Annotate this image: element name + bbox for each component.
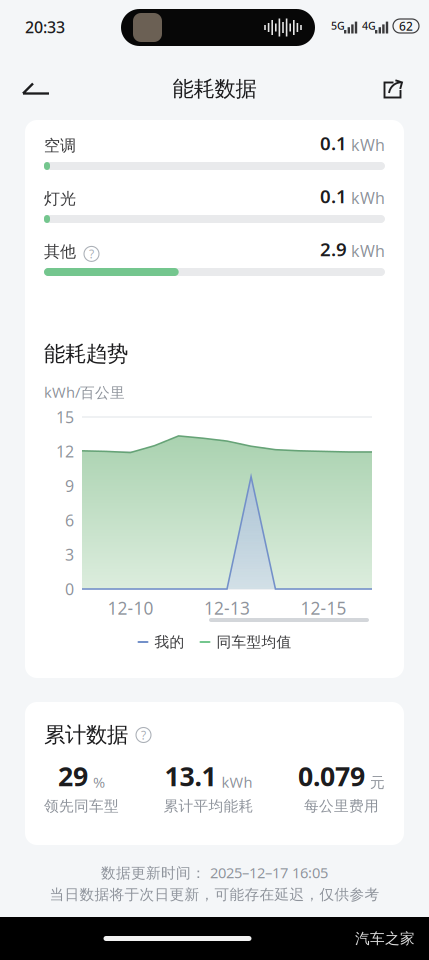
staticText: 0.079	[298, 758, 365, 794]
staticText: ?	[141, 727, 146, 743]
staticText: 元	[370, 774, 385, 792]
staticText: 累计平均能耗	[163, 797, 253, 815]
staticText: 12-10	[107, 596, 153, 619]
staticText: 20:33	[25, 16, 65, 38]
staticText: kWh	[221, 772, 252, 792]
staticText: 我的	[154, 633, 184, 651]
staticText: kWh	[351, 134, 385, 155]
staticText: 6	[65, 510, 74, 531]
staticText: kWh	[351, 187, 385, 208]
staticText: 5G	[331, 18, 345, 33]
staticText: ?	[89, 246, 94, 262]
staticText: 0.1	[320, 131, 347, 155]
staticText: 12-15	[301, 596, 347, 619]
staticText: 12	[56, 441, 74, 462]
staticText: 累计数据	[44, 722, 128, 748]
staticText: 29	[58, 758, 88, 794]
staticText: 4G	[362, 18, 376, 33]
staticText: kWh/百公里	[44, 382, 125, 402]
staticText: 领先同车型	[44, 797, 119, 815]
staticText: %	[93, 772, 105, 792]
staticText: 空调	[44, 136, 76, 155]
staticText: 其他	[44, 242, 76, 261]
staticText: 汽车之家	[355, 929, 415, 947]
staticText: 9	[65, 475, 74, 496]
staticText: 0	[65, 578, 74, 600]
staticText: 能耗数据	[172, 76, 256, 102]
staticText: kWh	[351, 240, 385, 261]
staticText: 能耗趋势	[44, 341, 128, 367]
staticText: 数据更新时间： 2025–12–17 16:05	[101, 863, 328, 882]
staticText: 15	[56, 406, 74, 428]
staticText: 当日数据将于次日更新，可能存在延迟，仅供参考	[49, 885, 379, 903]
staticText: 2.9	[320, 237, 347, 261]
staticText: 13.1	[164, 758, 216, 794]
button[interactable]: Share	[369, 65, 417, 113]
button[interactable]: Back	[12, 65, 60, 113]
staticText: 灯光	[44, 189, 76, 208]
staticText: 同车型均值	[216, 633, 291, 651]
staticText: 12-13	[204, 596, 250, 619]
staticText: 0.1	[320, 184, 347, 208]
staticText: 62	[399, 18, 413, 34]
staticText: 3	[65, 544, 74, 565]
staticText: 每公里费用	[304, 797, 379, 815]
